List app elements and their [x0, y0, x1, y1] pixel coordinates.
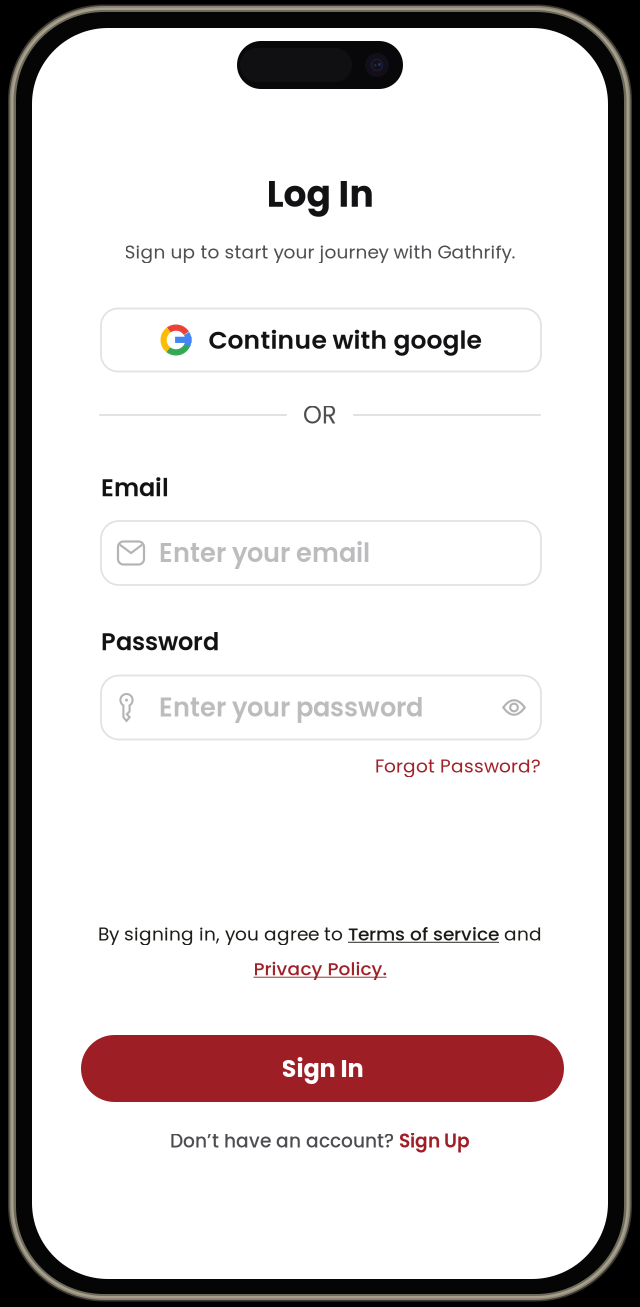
staticText: Email [101, 471, 169, 505]
staticText: Log In [266, 169, 373, 219]
staticText: Privacy Policy. [253, 956, 386, 982]
staticText: By signing in, you agree to Terms of ser… [98, 921, 542, 947]
staticText: Sign In [281, 1052, 363, 1085]
button[interactable]: Show password [497, 690, 531, 724]
button[interactable]: Forgot Password? [101, 753, 541, 779]
button[interactable]: Continue with google [101, 308, 541, 371]
staticText: Password [101, 625, 219, 659]
button[interactable]: Privacy Policy. [253, 956, 386, 982]
staticText: Forgot Password? [375, 753, 541, 779]
staticText: OR [303, 398, 337, 432]
staticText: Don’t have an account? [170, 1128, 399, 1154]
staticText: Sign Up [399, 1128, 470, 1154]
staticText: Continue with google [208, 322, 481, 357]
staticText: Enter your password [159, 690, 423, 725]
button[interactable]: Sign In [81, 1035, 564, 1102]
button[interactable]: Sign Up [399, 1128, 470, 1154]
staticText: Sign up to start your journey with Gathr… [124, 239, 515, 265]
staticText: Enter your email [159, 535, 370, 571]
